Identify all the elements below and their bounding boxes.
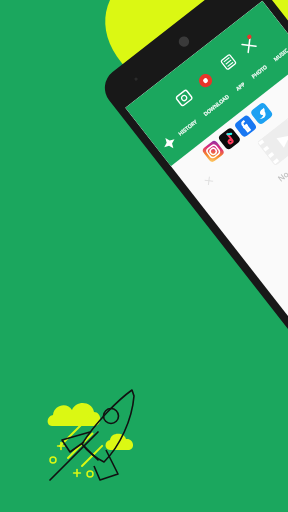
- button[interactable]: Downloader splash screen: [0, 0, 288, 512]
